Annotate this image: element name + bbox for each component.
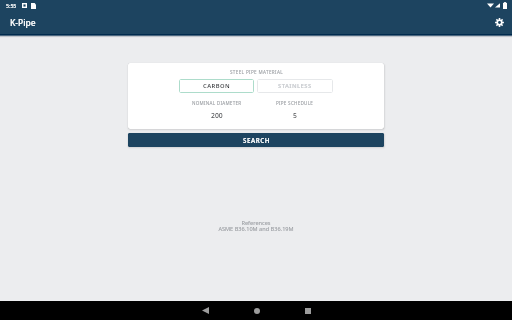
button[interactable]: SEARCH	[128, 133, 384, 147]
staticText: 200	[211, 111, 223, 120]
staticText: STEEL PIPE MATERIAL	[230, 69, 283, 75]
button[interactable]: Back	[180, 301, 231, 320]
button[interactable]: CARBON	[179, 79, 254, 93]
staticText: STAINLESS	[278, 82, 312, 90]
button[interactable]: Recent apps	[282, 301, 333, 320]
staticText: NOMINAL DIAMETER	[192, 100, 242, 106]
button[interactable]: NOMINAL DIAMETER	[179, 100, 254, 120]
staticText: CARBON	[203, 82, 231, 90]
staticText: 5	[293, 111, 297, 120]
staticText: K-Pipe	[10, 17, 36, 29]
button[interactable]: Settings	[491, 14, 507, 30]
staticText: SEARCH	[243, 136, 270, 144]
staticText: 5:55	[6, 2, 17, 9]
button[interactable]: Home	[231, 301, 282, 320]
button[interactable]: PIPE SCHEDULE	[257, 100, 333, 120]
staticText: PIPE SCHEDULE	[276, 100, 314, 106]
button[interactable]: STAINLESS	[257, 79, 333, 93]
staticText: References ASME B36.10M and B36.19M	[218, 219, 294, 233]
